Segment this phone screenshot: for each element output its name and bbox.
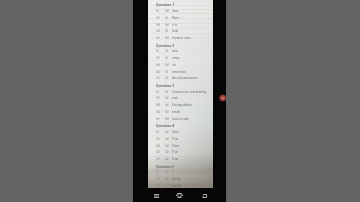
staticText: (ii) bbox=[156, 56, 160, 60]
staticText: (ii) bbox=[156, 16, 160, 20]
staticText: (a) bbox=[165, 103, 169, 107]
staticText: (c) bbox=[165, 56, 169, 60]
staticText: (iv) bbox=[156, 70, 161, 74]
staticText: Paint bbox=[172, 16, 180, 20]
staticText: (c) bbox=[165, 16, 169, 20]
staticText: (c) bbox=[165, 49, 169, 53]
staticText: (iii) bbox=[156, 63, 161, 67]
staticText: (iv) bbox=[156, 29, 161, 33]
staticText: (b) bbox=[165, 63, 169, 67]
staticText: False bbox=[172, 130, 180, 134]
staticText: Actual parameters bbox=[172, 76, 198, 80]
button[interactable]: Notification bbox=[219, 94, 227, 102]
staticText: (v) bbox=[156, 117, 160, 121]
staticText: new bbox=[172, 49, 178, 53]
button[interactable]: Home bbox=[167, 188, 191, 202]
staticText: (c) bbox=[165, 70, 169, 74]
staticText: (i) bbox=[156, 9, 159, 13]
staticText: Question 3 bbox=[156, 83, 175, 88]
staticText: (c) bbox=[165, 76, 169, 80]
staticText: True bbox=[172, 157, 179, 161]
staticText: (a) bbox=[165, 130, 169, 134]
staticText: (i) bbox=[156, 170, 159, 174]
button[interactable]: Recent apps bbox=[144, 188, 168, 202]
staticText: Question 2 bbox=[156, 43, 175, 48]
button[interactable]: Back bbox=[192, 188, 216, 202]
staticText: (iii) bbox=[156, 103, 161, 107]
staticText: (ii) bbox=[156, 177, 160, 181]
staticText: (i) bbox=[156, 130, 159, 134]
staticText: (b) bbox=[165, 36, 169, 40]
staticText: (ii) bbox=[156, 137, 160, 141]
staticText: Constructor overloading bbox=[172, 90, 207, 94]
staticText: (a) bbox=[165, 170, 169, 174]
staticText: (b) bbox=[165, 110, 169, 114]
staticText: source code bbox=[172, 117, 189, 121]
staticText: break bbox=[172, 110, 181, 114]
staticText: end bbox=[172, 96, 178, 100]
staticText: False bbox=[172, 144, 180, 148]
staticText: (i) bbox=[156, 49, 159, 53]
staticText: ? bbox=[172, 170, 174, 174]
staticText: (iii) bbox=[156, 23, 161, 27]
staticText: (a) bbox=[165, 157, 169, 161]
staticText: Question 4 bbox=[156, 123, 175, 128]
staticText: Question 1 bbox=[156, 2, 175, 7]
staticText: (b) bbox=[165, 23, 169, 27]
staticText: (a) bbox=[165, 137, 169, 141]
staticText: (ii) bbox=[156, 96, 160, 100]
staticText: (iv) bbox=[156, 150, 161, 154]
staticText: Scanner scan bbox=[172, 36, 191, 40]
staticText: (a) bbox=[165, 96, 169, 100]
staticText: final bbox=[172, 29, 179, 33]
staticText: (c) bbox=[165, 29, 169, 33]
staticText: (v) bbox=[156, 36, 160, 40]
staticText: (i) bbox=[156, 90, 159, 94]
staticText: String bbox=[172, 177, 181, 181]
staticText: (a) bbox=[165, 150, 169, 154]
staticText: (b) bbox=[165, 117, 169, 121]
staticText: Encapsulation bbox=[172, 103, 192, 107]
staticText: (d) bbox=[165, 9, 169, 13]
staticText: (v) bbox=[156, 157, 160, 161]
staticText: (iii) bbox=[156, 144, 161, 148]
staticText: (v) bbox=[156, 76, 160, 80]
staticText: (iv) bbox=[156, 110, 161, 114]
staticText: while() bbox=[172, 184, 182, 188]
staticText: class bbox=[172, 9, 179, 13]
staticText: (a) bbox=[165, 144, 169, 148]
staticText: array bbox=[172, 56, 180, 60]
staticText: int bbox=[172, 63, 176, 67]
staticText: new static bbox=[172, 70, 187, 74]
staticText: (d) bbox=[165, 177, 169, 181]
staticText: (iii) bbox=[156, 184, 161, 188]
staticText: it is bbox=[172, 23, 177, 27]
staticText: True bbox=[172, 137, 179, 141]
staticText: True bbox=[172, 150, 179, 154]
staticText: Question 5 bbox=[156, 164, 175, 169]
staticText: (c) bbox=[165, 90, 169, 94]
